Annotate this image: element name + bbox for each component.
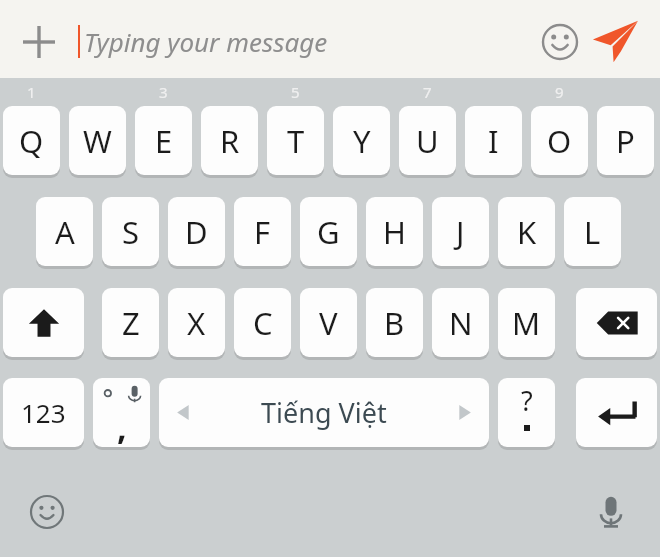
button[interactable]: V [300,288,357,357]
staticText: Y [353,120,371,162]
button[interactable]: B [366,288,423,357]
button[interactable]: Emoji keyboard [28,493,66,531]
button[interactable]: X [168,288,225,357]
button[interactable]: M [498,288,555,357]
staticText: V [319,302,338,344]
staticText: 5 [291,82,300,102]
staticText: 123 [21,395,66,430]
staticText: 9 [555,82,564,102]
button[interactable]: C [234,288,291,357]
button[interactable]: Comma, settings and voice [93,378,150,447]
staticText: , [117,404,127,447]
staticText: I [488,120,499,162]
button[interactable]: Q [3,106,60,175]
button[interactable]: D [168,197,225,266]
staticText: A [55,211,75,253]
staticText: L [584,211,601,253]
button[interactable]: W [69,106,126,175]
button[interactable]: E [135,106,192,175]
button[interactable]: F [234,197,291,266]
staticText: U [416,120,439,162]
button[interactable]: Question mark and period [498,378,555,447]
staticText: D [185,211,208,253]
staticText: R [220,120,240,162]
staticText: 7 [423,82,432,102]
staticText: H [383,211,406,253]
button[interactable]: Shift [3,288,84,357]
button[interactable]: 123 [3,378,84,447]
button[interactable]: H [366,197,423,266]
staticText: W [83,120,112,162]
button[interactable]: N [432,288,489,357]
staticText: S [122,211,140,253]
staticText: T [287,120,305,162]
button[interactable]: Add attachment [17,20,61,64]
button[interactable]: Z [102,288,159,357]
staticText: P [616,120,635,162]
button[interactable]: Send [591,18,639,64]
button[interactable]: U [399,106,456,175]
staticText: Z [122,302,140,344]
button[interactable]: P [597,106,654,175]
staticText: 3 [159,82,168,102]
staticText: O [547,120,572,162]
staticText: Tiếng Việt [261,394,387,431]
button[interactable]: Space, Tiếng Việt [159,378,489,447]
staticText: Typing your message [84,24,328,59]
staticText: J [456,211,465,253]
staticText: 1 [27,82,36,102]
button[interactable]: Enter [576,378,657,447]
staticText: K [517,211,537,253]
button[interactable]: G [300,197,357,266]
button[interactable]: T [267,106,324,175]
button[interactable]: K [498,197,555,266]
button[interactable]: O [531,106,588,175]
staticText: Q [19,120,44,162]
staticText: M [512,302,541,344]
button[interactable]: Voice input [592,492,630,532]
staticText: ? [521,382,533,419]
button[interactable]: A [36,197,93,266]
button[interactable]: Y [333,106,390,175]
staticText: F [254,211,271,253]
button[interactable]: R [201,106,258,175]
button[interactable]: Backspace [576,288,657,357]
button[interactable]: Typing your message [84,22,504,60]
staticText: G [317,211,340,253]
staticText: X [187,302,206,344]
staticText: E [155,120,173,162]
button[interactable]: L [564,197,621,266]
button[interactable]: J [432,197,489,266]
staticText: N [449,302,473,344]
staticText: B [384,302,405,344]
button[interactable]: Emoji [538,20,582,64]
button[interactable]: S [102,197,159,266]
staticText: C [253,302,273,344]
button[interactable]: I [465,106,522,175]
